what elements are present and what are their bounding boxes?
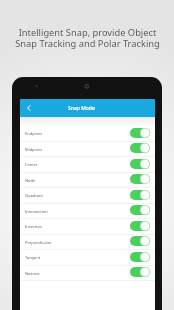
button[interactable]: Quadrant (20, 188, 155, 204)
staticText: Intelligent Snap, provide Object Snap Tr… (15, 26, 160, 50)
button[interactable]: Intersection (20, 204, 155, 219)
button[interactable]: Toggle (130, 190, 150, 200)
staticText: Endpoint (25, 131, 42, 136)
staticText: Nearest (25, 271, 40, 276)
button[interactable]: Toggle (130, 159, 150, 169)
button[interactable]: Tangent (20, 250, 155, 266)
button[interactable]: Toggle (130, 252, 150, 262)
staticText: Insertion (25, 224, 43, 229)
button[interactable]: Toggle (130, 174, 150, 184)
button[interactable]: Insertion (20, 219, 155, 235)
button[interactable]: Toggle (130, 143, 150, 153)
button[interactable]: Endpoint (20, 126, 155, 142)
button[interactable]: Toggle (130, 267, 150, 277)
staticText: Midpoint (25, 147, 42, 152)
staticText: Intersection (25, 209, 48, 214)
staticText: Center (25, 162, 38, 167)
staticText: Perpendicular (25, 240, 52, 245)
button[interactable]: Toggle (130, 236, 150, 246)
staticText: Tangent (25, 255, 41, 260)
button[interactable]: Back (20, 99, 37, 117)
staticText: Snap Mode (68, 105, 95, 112)
staticText: Quadrant (25, 193, 44, 198)
button[interactable]: Nearest (20, 266, 155, 281)
button[interactable]: Toggle (130, 128, 150, 138)
staticText: Node (25, 178, 36, 183)
button[interactable]: Midpoint (20, 142, 155, 157)
button[interactable]: Toggle (130, 205, 150, 215)
button[interactable]: Node (20, 173, 155, 188)
button[interactable]: Center (20, 157, 155, 173)
button[interactable]: Perpendicular (20, 235, 155, 250)
button[interactable]: Toggle (130, 221, 150, 231)
